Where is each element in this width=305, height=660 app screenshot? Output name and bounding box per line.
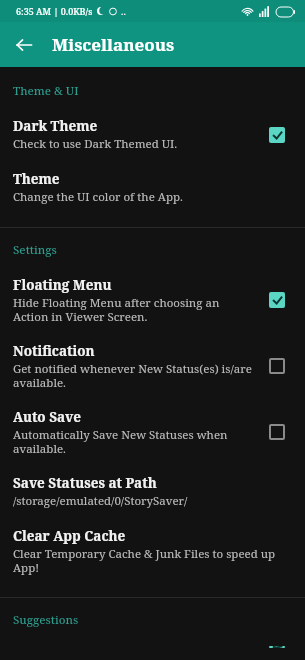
staticText: Floating Menu <box>13 276 112 294</box>
staticText: .. <box>121 5 126 17</box>
button[interactable]: Dark Theme <box>0 111 305 164</box>
button[interactable]: Unchecked <box>262 351 292 381</box>
staticText: Dark Theme <box>13 117 98 135</box>
staticText: Auto Save <box>13 408 81 426</box>
staticText: Suggestions <box>13 612 79 628</box>
button[interactable]: Theme <box>0 164 305 217</box>
staticText: 6:35 AM | 0.0KB/s <box>16 5 93 17</box>
staticText: Save Statuses at Path <box>13 474 157 492</box>
button[interactable]: Checked <box>262 120 292 150</box>
staticText: Theme & UI <box>13 83 79 99</box>
staticText: Clear App Cache <box>13 527 126 545</box>
staticText: Hide Floating Menu after choosing an Act… <box>13 295 220 324</box>
button[interactable]: Clear App Cache <box>0 521 305 587</box>
staticText: Change the UI color of the App. <box>13 189 183 205</box>
button[interactable]: Back <box>6 27 42 63</box>
button[interactable]: Unchecked <box>262 417 292 447</box>
staticText: Theme <box>13 170 60 188</box>
button[interactable]: Floating Menu <box>0 270 305 336</box>
button[interactable]: Notification <box>0 336 305 402</box>
staticText: Check to use Dark Themed UI. <box>13 136 178 152</box>
button[interactable]: Checked <box>262 646 292 648</box>
staticText: Get notified whenever New Status(es) is/… <box>13 361 252 390</box>
staticText: Automatically Save New Statuses when ava… <box>13 427 228 456</box>
button[interactable]: Auto Save <box>0 402 305 468</box>
staticText: Settings <box>13 242 57 258</box>
button[interactable]: App Suggestions <box>0 640 305 660</box>
staticText: /storage/emulated/0/StorySaver/ <box>13 493 188 509</box>
staticText: Notification <box>13 342 95 360</box>
button[interactable]: Save Statuses at Path <box>0 468 305 521</box>
staticText: Miscellaneous <box>52 33 175 56</box>
staticText: Clear Temporary Cache & Junk Files to sp… <box>13 546 292 575</box>
button[interactable]: Checked <box>262 285 292 315</box>
